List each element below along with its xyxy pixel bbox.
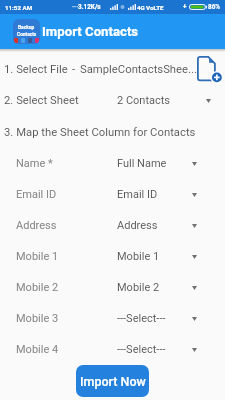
button[interactable]: Import Now (76, 365, 149, 397)
staticText: Address (117, 219, 192, 232)
staticText: Name * (16, 157, 117, 170)
button[interactable]: 2 Contacts (117, 94, 211, 107)
button[interactable]: Select file (197, 56, 223, 82)
staticText: 11:52 AM (5, 4, 33, 11)
staticText: 4G (137, 4, 145, 11)
staticText: Mobile 2 (16, 281, 117, 294)
staticText: Import Contacts (42, 24, 139, 39)
staticText: Import Now (80, 374, 146, 389)
staticText: Mobile 2 (117, 281, 192, 294)
staticText: Mobile 3 (16, 312, 117, 325)
staticText: Mobile 1 (16, 250, 117, 263)
staticText: ---Select--- (117, 343, 192, 356)
button[interactable]: Mobile 3 (0, 303, 225, 334)
staticText: Contacts (17, 32, 37, 38)
button[interactable]: Address (0, 210, 225, 241)
staticText: Email ID (117, 188, 192, 201)
staticText: 2 Contacts (117, 94, 171, 107)
button[interactable]: Name * (0, 148, 225, 179)
staticText: Email ID (16, 188, 117, 201)
button[interactable]: Mobile 1 (0, 241, 225, 272)
staticText: 2. Select Sheet (4, 94, 79, 107)
staticText: + (183, 3, 187, 11)
staticText: SampleContactsShee... (80, 63, 197, 76)
staticText: 3. Map the Sheet Column for Contacts (4, 126, 196, 139)
staticText: Mobile 4 (16, 343, 117, 356)
staticText: 3.12K/s (78, 3, 101, 11)
staticText: Full Name (117, 157, 192, 170)
staticText: Mobile 1 (117, 250, 192, 263)
button[interactable]: 1. Select File (0, 56, 225, 82)
staticText: Backup (18, 25, 35, 31)
button[interactable]: Email ID (0, 179, 225, 210)
staticText: ---Select--- (117, 312, 192, 325)
staticText: 1. Select File (4, 63, 68, 76)
button[interactable]: Mobile 2 (0, 272, 225, 303)
staticText: VoLTE (146, 4, 164, 11)
staticText: ··· (72, 3, 79, 11)
staticText: - (72, 63, 76, 76)
button[interactable]: Mobile 4 (0, 334, 225, 365)
staticText: Address (16, 219, 117, 232)
button[interactable]: App icon (13, 19, 40, 44)
staticText: 86% (208, 3, 221, 11)
